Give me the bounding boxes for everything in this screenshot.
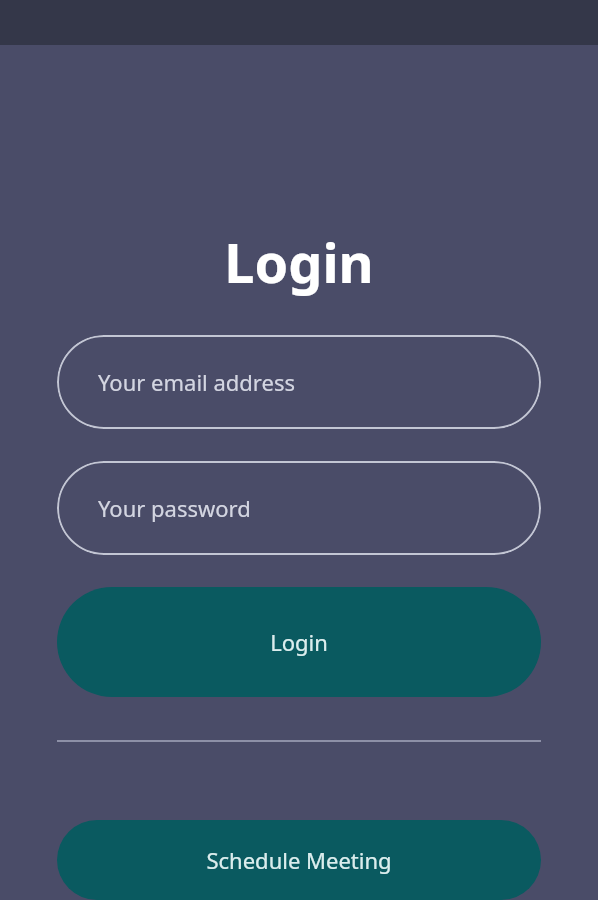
button[interactable]: Your password — [57, 461, 541, 555]
button[interactable]: Login — [57, 587, 541, 697]
staticText: Login — [270, 627, 328, 657]
staticText: Your password — [98, 493, 251, 523]
button[interactable]: Your email address — [57, 335, 541, 429]
staticText: Schedule Meeting — [206, 845, 392, 875]
button[interactable]: Schedule Meeting — [57, 820, 541, 900]
staticText: Your email address — [98, 367, 295, 397]
staticText: Login — [0, 225, 598, 299]
